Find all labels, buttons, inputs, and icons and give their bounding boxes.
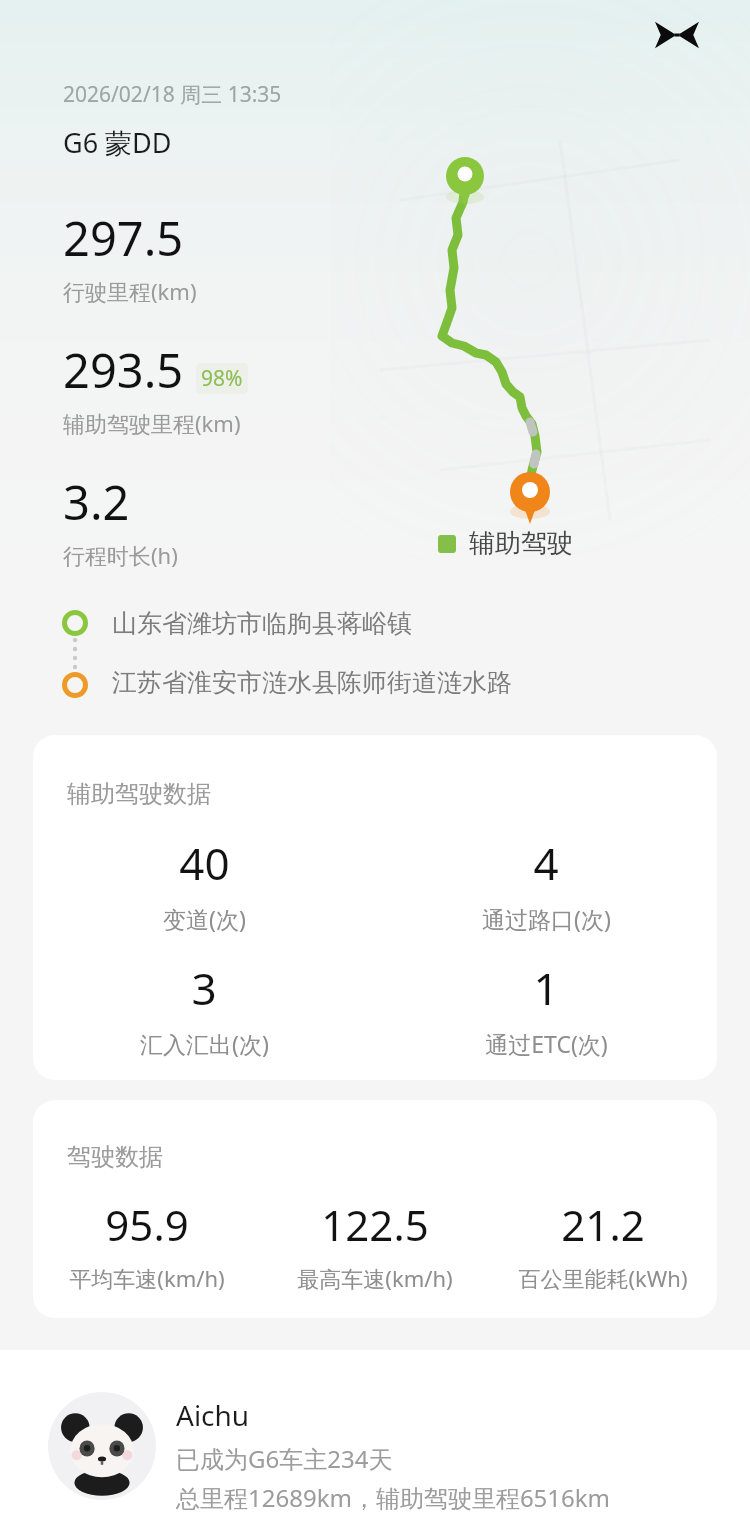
button[interactable]: 40 <box>33 833 375 934</box>
button[interactable]: Brand logo <box>650 8 704 62</box>
button[interactable]: 驾驶数据 <box>33 1100 717 1318</box>
staticText: 行程时长(h) <box>63 540 178 570</box>
staticText: 4 <box>533 833 559 893</box>
staticText: 百公里能耗(kWh) <box>518 1263 688 1293</box>
staticText: 驾驶数据 <box>67 1142 163 1172</box>
staticText: 辅助驾驶数据 <box>67 779 211 809</box>
staticText: 汇入汇出(次) <box>140 1028 269 1059</box>
staticText: 98% <box>201 364 243 393</box>
staticText: G6 蒙DD <box>63 124 172 161</box>
staticText: 山东省潍坊市临朐县蒋峪镇 <box>112 608 412 639</box>
staticText: 297.5 <box>63 206 184 270</box>
staticText: 变道(次) <box>163 903 246 934</box>
staticText: 3.2 <box>63 470 130 534</box>
staticText: 辅助驾驶 <box>469 527 573 560</box>
staticText: 辅助驾驶里程(km) <box>63 408 241 438</box>
staticText: 40 <box>179 833 230 893</box>
staticText: 21.2 <box>561 1196 645 1253</box>
button[interactable]: 4 <box>375 833 717 934</box>
staticText: 95.9 <box>105 1196 189 1253</box>
staticText: 总里程12689km，辅助驾驶里程6516km <box>176 1481 611 1514</box>
button[interactable]: Aichu <box>0 1350 750 1539</box>
button[interactable]: 21.2 <box>489 1196 717 1293</box>
staticText: 已成为G6车主234天 <box>176 1442 393 1475</box>
staticText: 平均车速(km/h) <box>69 1263 225 1293</box>
button[interactable]: 1 <box>375 958 717 1059</box>
button[interactable]: 3 <box>33 958 375 1059</box>
staticText: Aichu <box>176 1396 250 1434</box>
staticText: 最高车速(km/h) <box>297 1263 453 1293</box>
staticText: 293.5 <box>63 338 184 402</box>
staticText: 1 <box>533 958 559 1018</box>
staticText: 通过ETC(次) <box>485 1028 608 1059</box>
button[interactable]: 122.5 <box>261 1196 489 1293</box>
button[interactable]: 辅助驾驶数据 <box>33 735 717 1080</box>
staticText: 3 <box>191 958 217 1018</box>
staticText: 行驶里程(km) <box>63 276 197 306</box>
staticText: 通过路口(次) <box>482 903 611 934</box>
staticText: 122.5 <box>321 1196 429 1253</box>
button[interactable]: 95.9 <box>33 1196 261 1293</box>
staticText: 2026/02/18 周三 13:35 <box>63 80 282 109</box>
staticText: 江苏省淮安市涟水县陈师街道涟水路 <box>112 667 512 698</box>
